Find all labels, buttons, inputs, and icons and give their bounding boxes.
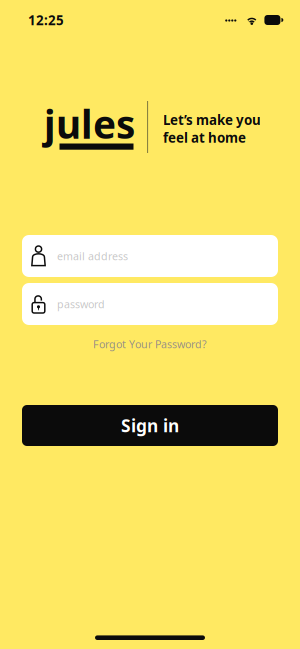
staticText: Forgot Your Password? [93,337,207,351]
button[interactable]: Forgot Your Password? [0,325,300,363]
staticText: Let’s make you feel at home [163,111,261,146]
button[interactable]: Sign in [22,405,278,446]
staticText: email address [57,249,128,263]
staticText: 12:25 [28,11,64,29]
staticText: password [57,297,105,311]
button[interactable]: password [22,283,278,325]
staticText: jules [44,98,135,149]
button[interactable]: email address [22,235,278,277]
staticText: Sign in [121,414,179,437]
